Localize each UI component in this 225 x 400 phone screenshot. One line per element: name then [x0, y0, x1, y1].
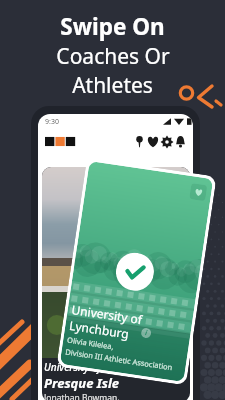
button[interactable]: Location	[133, 135, 146, 148]
button[interactable]: Like	[60, 161, 213, 382]
staticText: Presque Isle	[44, 374, 120, 392]
button[interactable]: Notifications	[174, 135, 187, 148]
staticText: University of	[71, 301, 143, 327]
staticText: Lynchburg	[68, 317, 131, 342]
button[interactable]: Favorites	[146, 135, 160, 149]
staticText: Jonathan Bowman,	[44, 392, 120, 400]
staticText: Coaches Or	[56, 42, 170, 71]
button[interactable]: Like	[189, 183, 207, 201]
staticText: Division III Athletic Association	[65, 346, 173, 372]
button[interactable]: S2S home	[45, 135, 73, 148]
staticText: 9:30	[45, 117, 59, 127]
button[interactable]: University of Maine	[42, 167, 190, 400]
staticText: i	[144, 328, 149, 338]
staticText: University of Maine	[44, 360, 132, 374]
button[interactable]: Info	[140, 327, 152, 339]
staticText: Swipe On	[60, 11, 165, 42]
staticText: Athletes	[72, 71, 153, 100]
button[interactable]: Settings	[160, 135, 174, 149]
staticText: Olivia Kilelea,	[67, 335, 115, 351]
